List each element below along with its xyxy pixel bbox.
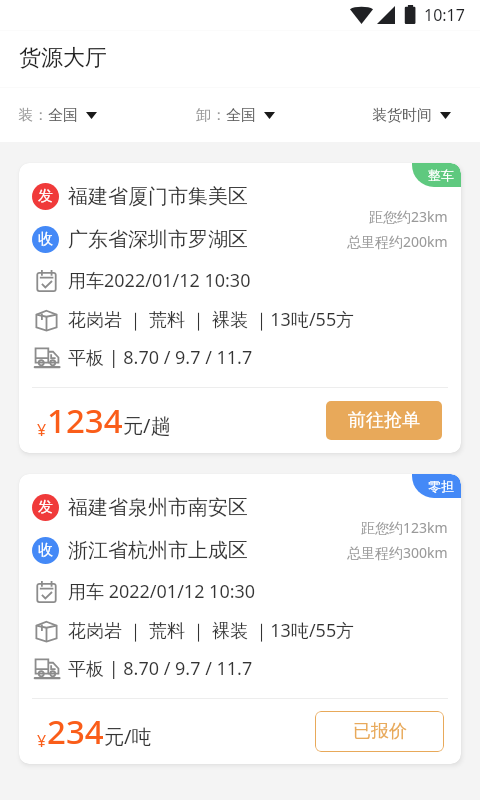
staticText: 用车2022/01/12 10:30 xyxy=(68,268,251,293)
staticText: 整车 xyxy=(428,167,454,183)
button[interactable]: 装： xyxy=(18,106,97,125)
staticText: 花岗岩 ｜ 荒料 ｜ 裸装 ｜13吨/55方 xyxy=(68,618,355,643)
staticText: 元/趟 xyxy=(123,412,171,439)
staticText: 发 xyxy=(38,498,53,517)
staticText: 距您约23km xyxy=(369,207,448,226)
button[interactable]: 已报价 xyxy=(315,711,444,752)
staticText: 1234 xyxy=(47,398,123,443)
staticText: 总里程约200km xyxy=(347,232,448,251)
staticText: 平板 | 8.70 / 9.7 / 11.7 xyxy=(68,345,253,370)
staticText: 元/吨 xyxy=(104,723,152,750)
staticText: 福建省泉州市南安区 xyxy=(68,495,248,520)
button[interactable]: 发 xyxy=(19,474,461,764)
staticText: 装： xyxy=(18,106,48,125)
staticText: 卸： xyxy=(196,106,226,125)
staticText: ¥ xyxy=(37,419,47,441)
staticText: 零担 xyxy=(428,478,454,494)
staticText: 总里程约300km xyxy=(347,543,448,562)
button[interactable]: 发 xyxy=(19,163,461,453)
staticText: ¥ xyxy=(37,730,47,752)
button[interactable]: 前往抢单 xyxy=(326,401,442,440)
staticText: 距您约123km xyxy=(361,518,448,537)
staticText: 全国 xyxy=(48,106,78,125)
staticText: 前往抢单 xyxy=(348,409,420,432)
staticText: 用车 2022/01/12 10:30 xyxy=(68,579,256,604)
staticText: 10:17 xyxy=(424,4,465,26)
staticText: 广东省深圳市罗湖区 xyxy=(68,227,248,252)
staticText: 全国 xyxy=(226,106,256,125)
staticText: 浙江省杭州市上成区 xyxy=(68,538,248,563)
staticText: 福建省厦门市集美区 xyxy=(68,184,248,209)
staticText: 234 xyxy=(47,709,104,754)
staticText: 发 xyxy=(38,187,53,206)
button[interactable]: 卸： xyxy=(196,106,275,125)
staticText: 收 xyxy=(38,541,53,560)
staticText: 装货时间 xyxy=(372,106,432,125)
staticText: 已报价 xyxy=(353,720,407,743)
staticText: 收 xyxy=(38,230,53,249)
staticText: 花岗岩 ｜ 荒料 ｜ 裸装 ｜13吨/55方 xyxy=(68,307,355,332)
staticText: 平板 | 8.70 / 9.7 / 11.7 xyxy=(68,656,253,681)
staticText: 货源大厅 xyxy=(19,44,107,72)
button[interactable]: 装货时间 xyxy=(372,106,451,125)
